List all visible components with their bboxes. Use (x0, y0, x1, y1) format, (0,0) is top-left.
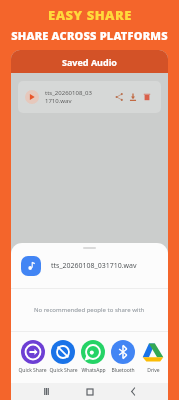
staticText: tts_20260108_031710.wav (51, 261, 137, 271)
staticText: WhatsApp (81, 367, 106, 374)
button[interactable]: Home (81, 383, 98, 400)
button[interactable]: Back (125, 383, 142, 400)
button[interactable]: tts_20260108_031710.wav (21, 256, 158, 276)
button[interactable]: Drive (138, 338, 168, 376)
button[interactable]: Bluetooth (108, 338, 138, 376)
staticText: EASY SHARE (48, 6, 132, 24)
button[interactable]: Recent apps (38, 383, 55, 400)
button[interactable]: Share (112, 90, 126, 104)
staticText: 1710.wav (45, 97, 72, 105)
button[interactable]: Quick Share (48, 338, 78, 376)
staticText: No recommended people to share with (34, 306, 145, 314)
button[interactable]: Download (126, 90, 140, 104)
button[interactable]: Play (25, 90, 39, 104)
button[interactable]: Play (18, 81, 161, 113)
button[interactable]: WhatsApp (78, 338, 108, 376)
staticText: Saved Audio (62, 56, 117, 68)
staticText: Drive (147, 367, 160, 374)
button[interactable]: Delete (140, 90, 154, 104)
staticText: Quick Share (18, 367, 47, 374)
staticText: Quick Share (49, 367, 78, 374)
staticText: tts_20260108_03 (45, 89, 92, 97)
staticText: SHARE ACROSS PLATFORMS (11, 28, 168, 43)
button[interactable]: Quick Share (17, 338, 48, 376)
staticText: Bluetooth (111, 367, 135, 374)
